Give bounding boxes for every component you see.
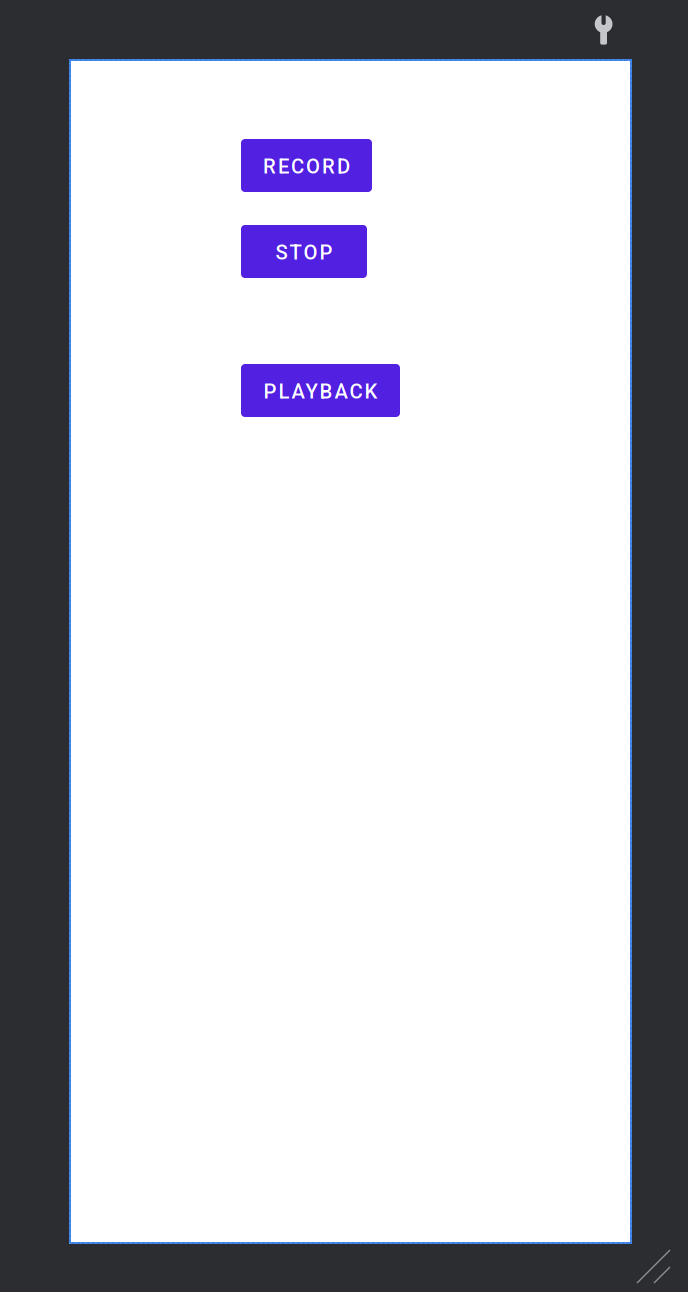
staticText: PLAYBACK bbox=[263, 380, 377, 403]
button[interactable]: Settings bbox=[584, 10, 624, 50]
button[interactable]: PLAYBACK bbox=[241, 364, 400, 417]
button[interactable]: Resize preview bbox=[636, 1249, 671, 1284]
staticText: RECORD bbox=[263, 155, 350, 178]
staticText: STOP bbox=[275, 241, 332, 264]
button[interactable]: RECORD bbox=[241, 139, 372, 192]
button[interactable]: STOP bbox=[241, 225, 367, 278]
